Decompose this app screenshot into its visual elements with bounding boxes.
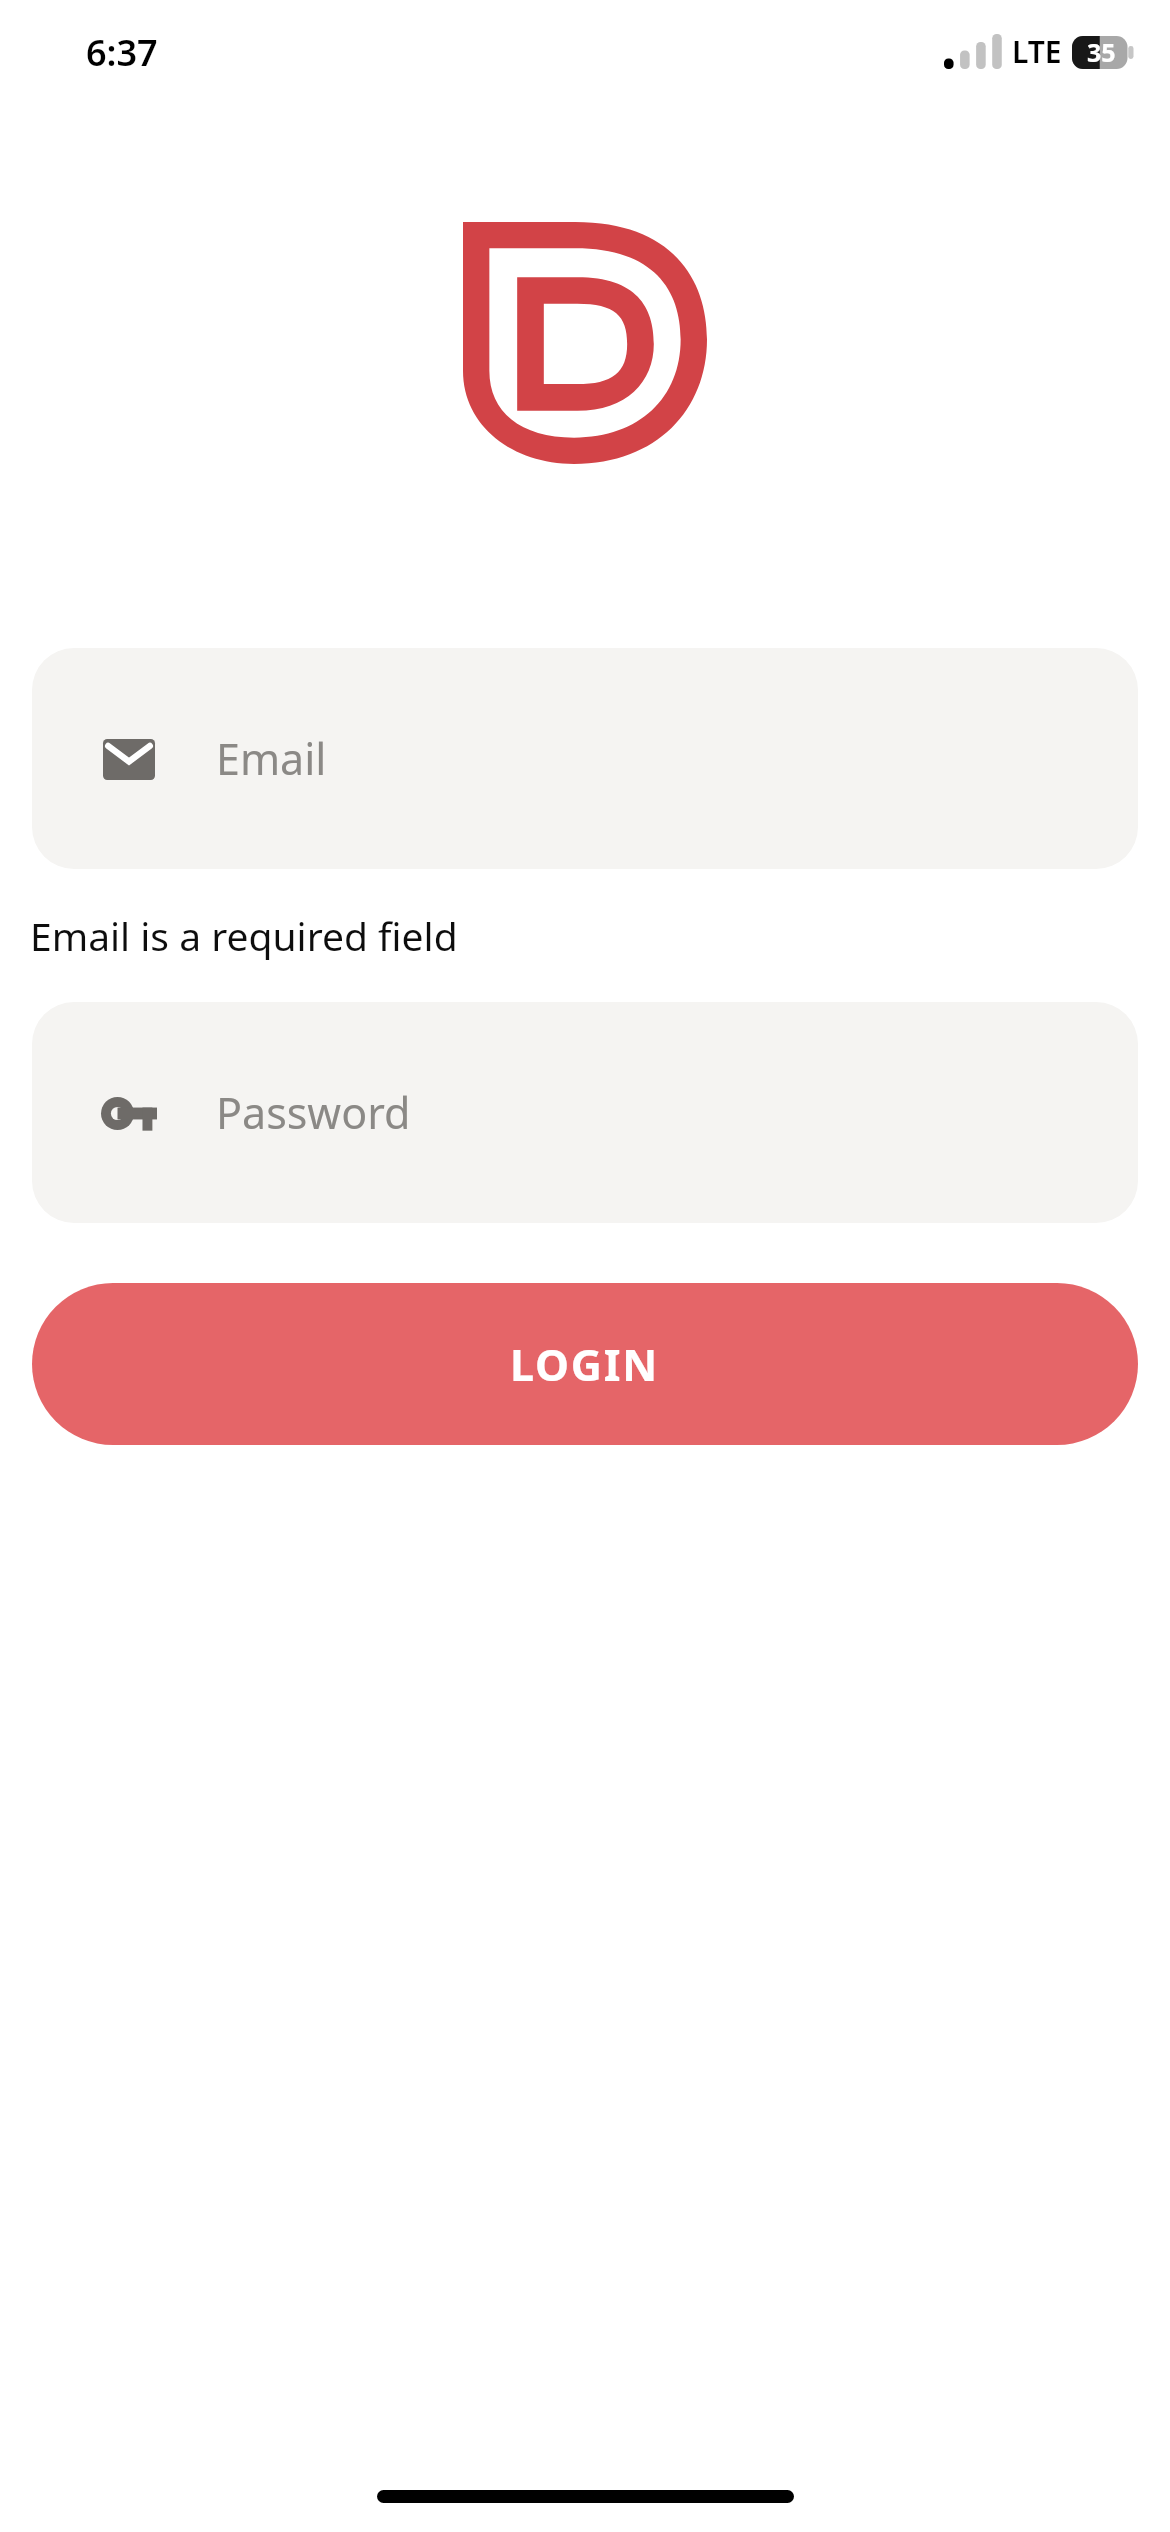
staticText: Email [216, 729, 327, 788]
staticText: Password [216, 1083, 411, 1142]
button[interactable]: Email field [32, 648, 1138, 869]
staticText: Email is a required field [30, 909, 458, 962]
button[interactable]: LOGIN [32, 1283, 1138, 1445]
button[interactable]: Password field [32, 1002, 1138, 1223]
staticText: LOGIN [510, 1335, 660, 1394]
staticText: 35 [1087, 35, 1116, 69]
staticText: LTE [1012, 31, 1062, 72]
staticText: 6:37 [86, 28, 158, 77]
